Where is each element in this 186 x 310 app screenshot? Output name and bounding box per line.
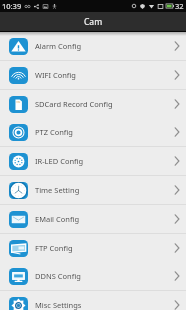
staticText: SDCard Record Config	[35, 99, 113, 109]
staticText: 32	[175, 1, 184, 11]
button[interactable]: EMail Config	[0, 205, 186, 234]
button[interactable]: WIFI Config	[0, 61, 186, 90]
button[interactable]: IR-LED Config	[0, 147, 186, 176]
staticText: PTZ Config	[35, 127, 73, 137]
button[interactable]: FTP Config	[0, 234, 186, 263]
staticText: Time Setting	[35, 185, 80, 195]
button[interactable]: SDCard Record Config	[0, 90, 186, 119]
staticText: 10:39	[2, 1, 22, 11]
button[interactable]: Misc Settings	[0, 291, 186, 310]
staticText: Cam	[84, 16, 103, 28]
button[interactable]: PTZ Config	[0, 118, 186, 147]
staticText: DDNS Config	[35, 271, 81, 281]
staticText: IR-LED Config	[35, 156, 84, 166]
button[interactable]: Time Setting	[0, 176, 186, 205]
button[interactable]: Alarm Config	[0, 32, 186, 61]
staticText: WIFI Config	[35, 70, 76, 80]
staticText: EMail Config	[35, 214, 80, 224]
staticText: Misc Settings	[35, 300, 82, 310]
staticText: Alarm Config	[35, 41, 82, 51]
button[interactable]: DDNS Config	[0, 262, 186, 291]
staticText: FTP Config	[35, 243, 73, 253]
